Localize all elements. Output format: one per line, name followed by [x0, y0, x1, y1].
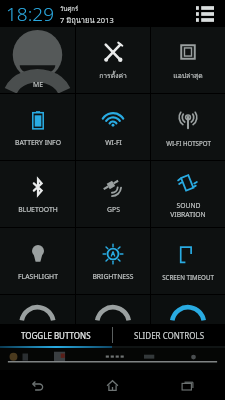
staticText: FLASHLIGHT — [18, 272, 58, 281]
button[interactable]: Recent apps — [150, 370, 225, 400]
button[interactable]: BATTERY INFO — [0, 94, 75, 160]
button[interactable]: Toggle — [0, 295, 75, 324]
button[interactable]: FLASHLIGHT — [0, 228, 75, 294]
staticText: การตั้งค่า — [99, 70, 127, 81]
button[interactable]: Toggle — [76, 295, 150, 324]
button[interactable]: การตั้งค่า — [76, 27, 150, 93]
button[interactable]: SCREEN TIMEOUT — [151, 228, 225, 294]
button[interactable]: SLIDER CONTROLS — [113, 324, 225, 346]
staticText: WI-FI — [105, 138, 122, 147]
staticText: BRIGHTNESS — [92, 272, 134, 281]
button[interactable]: ME — [0, 27, 75, 93]
staticText: VIBRATION — [170, 210, 206, 219]
staticText: 7 มิถุนายน 2013 — [60, 14, 114, 26]
button[interactable]: SOUND — [151, 161, 225, 227]
staticText: แอปล่าสุด — [173, 70, 203, 81]
button[interactable]: BLUETOOTH — [0, 161, 75, 227]
staticText: BLUETOOTH — [18, 205, 58, 214]
button[interactable]: BRIGHTNESS — [76, 228, 150, 294]
staticText: GPS — [107, 205, 120, 214]
button[interactable]: Menu — [192, 1, 218, 27]
button[interactable]: TOGGLE BUTTONS — [0, 324, 112, 346]
staticText: SCREEN TIMEOUT — [162, 273, 214, 281]
button[interactable]: Toggle — [151, 295, 225, 324]
staticText: SLIDER CONTROLS — [134, 330, 205, 341]
button[interactable]: WI-FI HOTSPOT — [151, 94, 225, 160]
staticText: TOGGLE BUTTONS — [21, 330, 91, 341]
button[interactable]: แอปล่าสุด — [151, 27, 225, 93]
staticText: 18:29 — [6, 1, 55, 27]
button[interactable]: Back — [0, 370, 75, 400]
staticText: SOUND — [176, 201, 201, 210]
button[interactable]: Home — [75, 370, 150, 400]
staticText: ME — [33, 80, 43, 89]
staticText: BATTERY INFO — [15, 138, 61, 147]
staticText: วันศุกร์ — [60, 4, 79, 14]
staticText: WI-FI HOTSPOT — [166, 139, 211, 147]
button[interactable]: WI-FI — [76, 94, 150, 160]
button[interactable]: GPS — [76, 161, 150, 227]
